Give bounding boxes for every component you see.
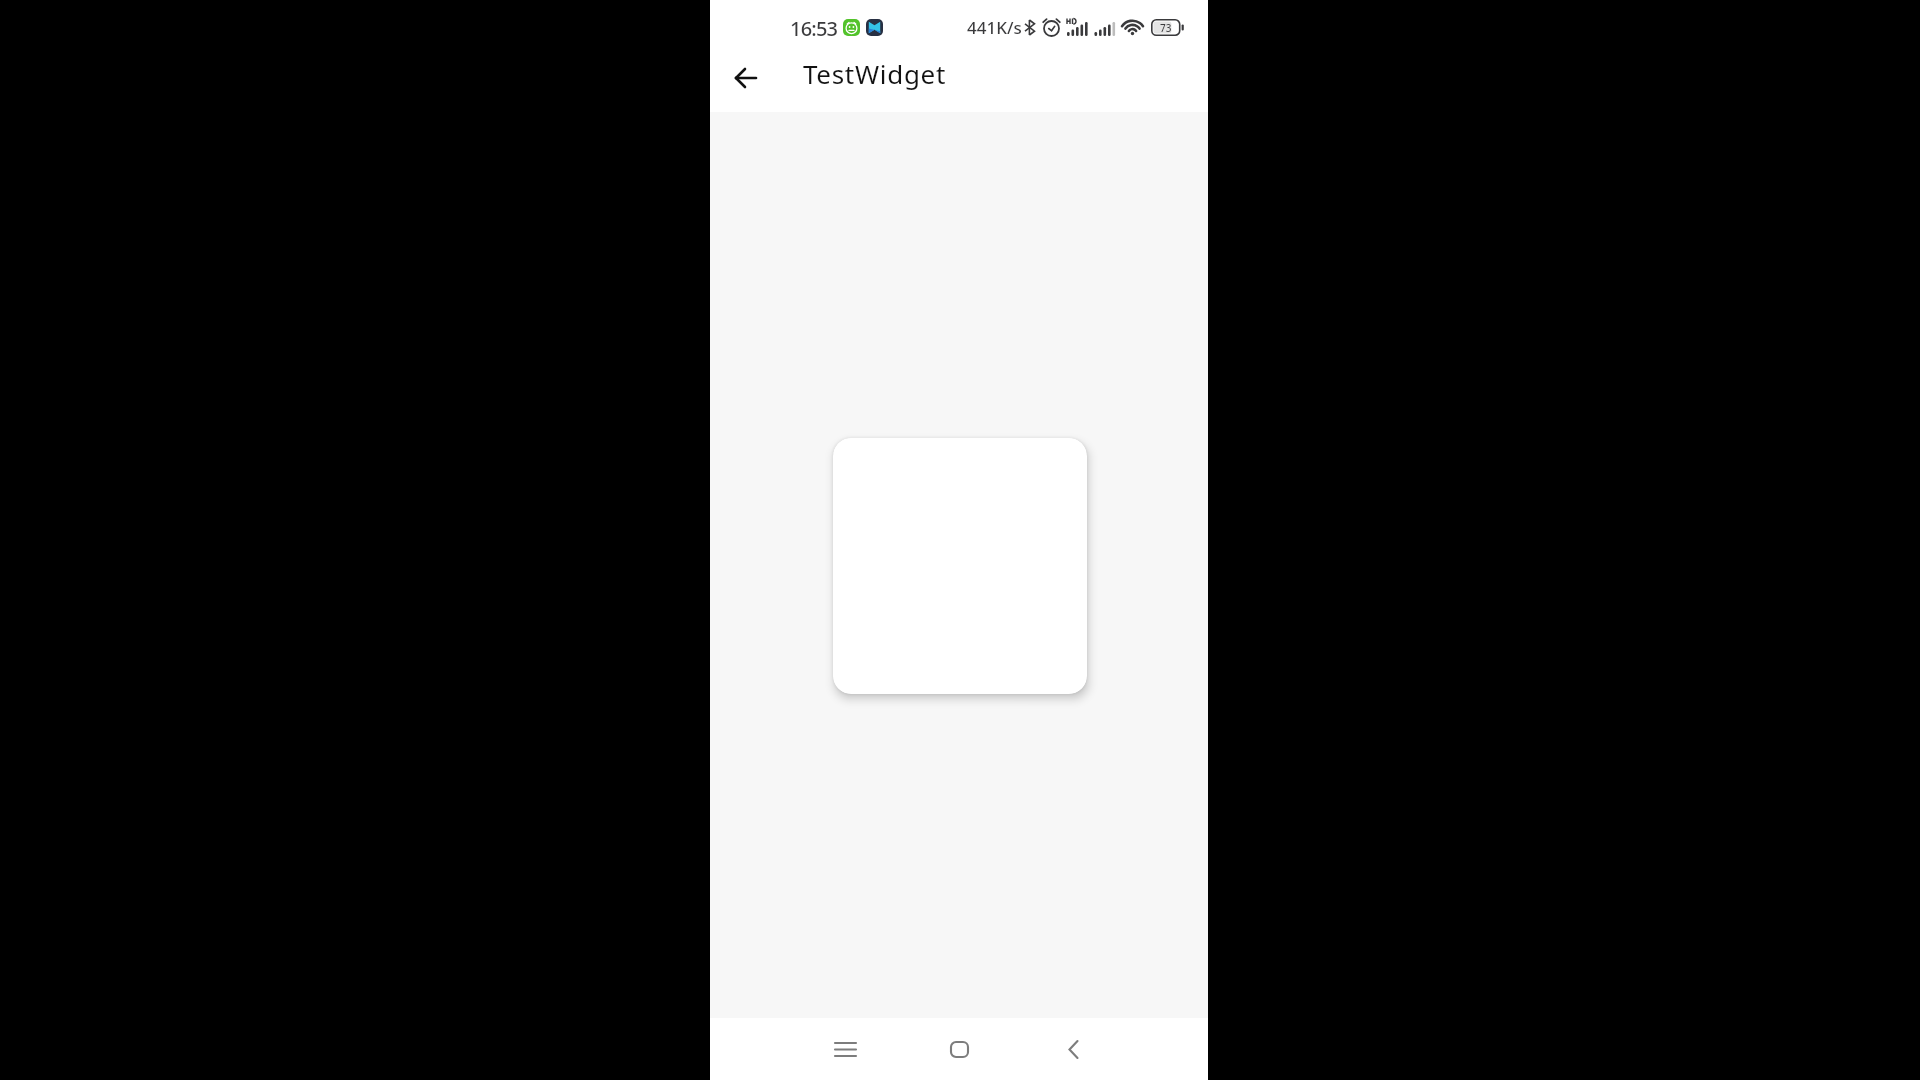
button[interactable]: [1053, 1029, 1093, 1069]
staticText: 73: [1160, 21, 1172, 35]
staticText: 16:53: [790, 15, 838, 42]
button[interactable]: [726, 58, 766, 98]
button[interactable]: [939, 1029, 979, 1069]
button[interactable]: [825, 1029, 865, 1069]
staticText: TestWidget: [803, 56, 947, 91]
staticText: 441K/s: [967, 16, 1022, 39]
